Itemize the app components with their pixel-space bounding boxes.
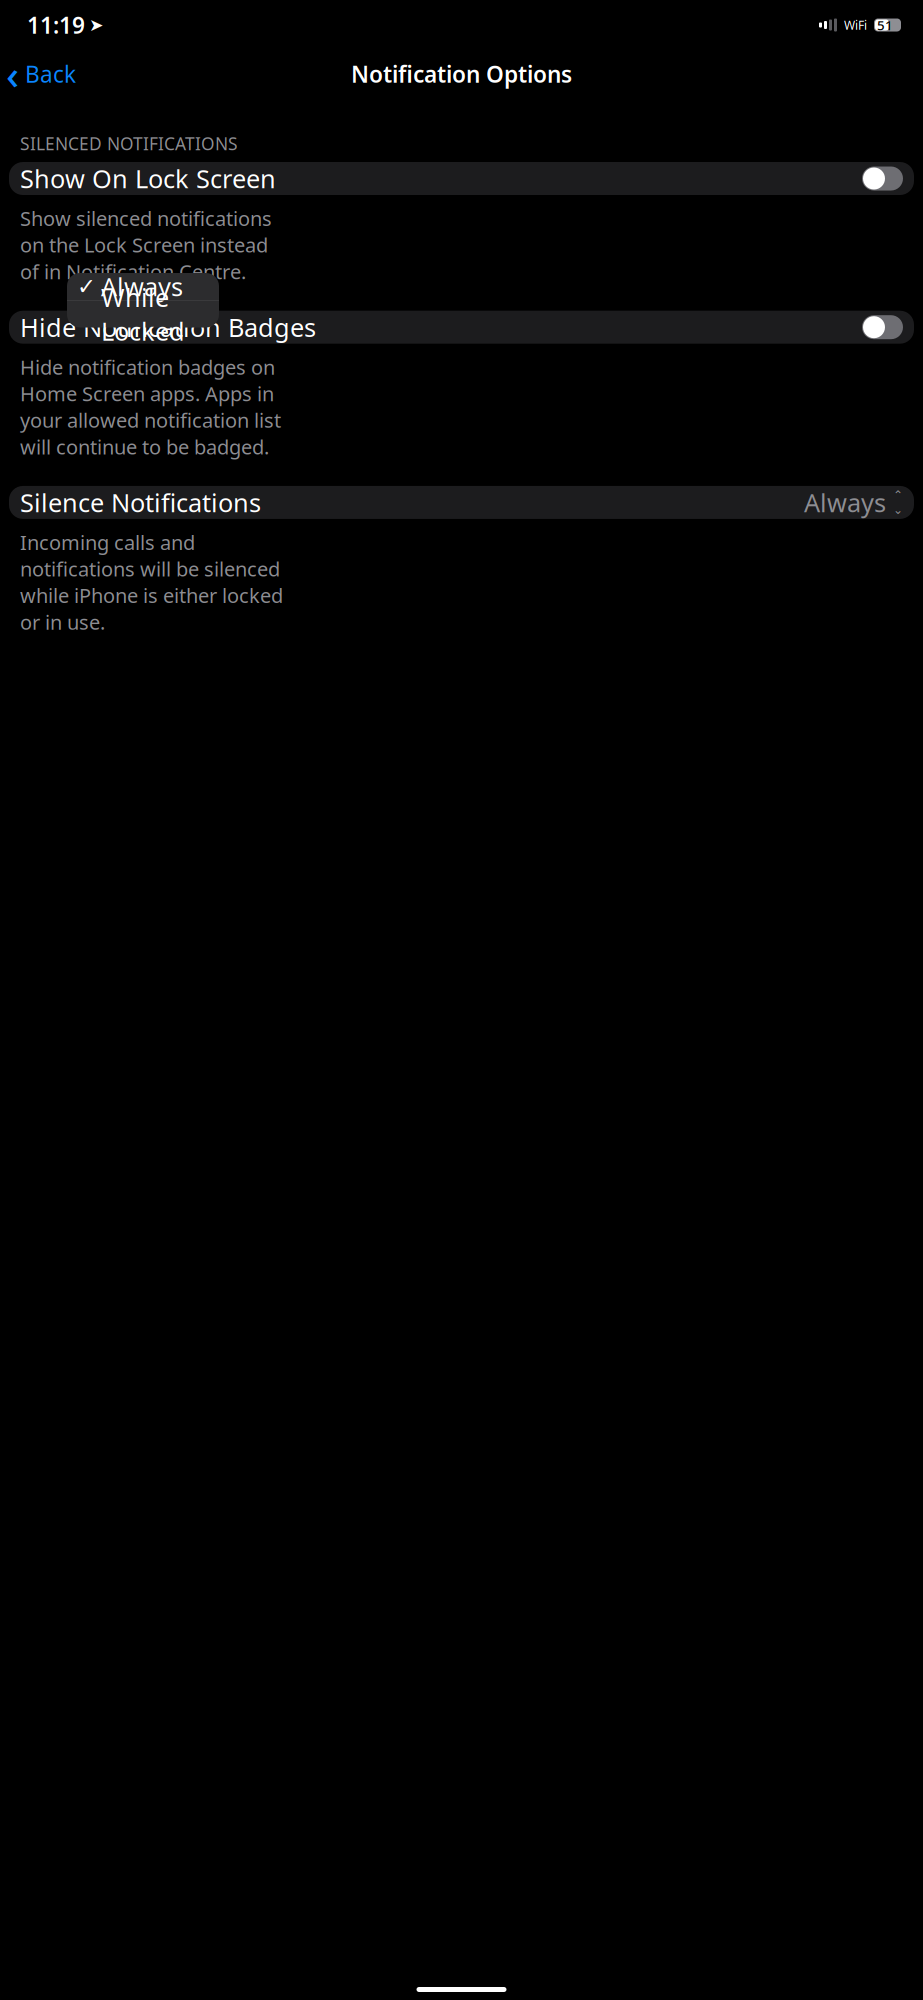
staticText: Show On Lock Screen	[20, 162, 276, 195]
staticText: 51	[877, 16, 893, 34]
staticText: Incoming calls and notifications will be…	[20, 529, 283, 635]
staticText: ✓	[77, 274, 96, 299]
staticText: SILENCED NOTIFICATIONS	[20, 132, 238, 155]
staticText: Show silenced notifications on the Lock …	[20, 205, 272, 285]
staticText: Always	[101, 270, 183, 303]
staticText: ➤	[89, 15, 104, 35]
staticText: Hide Notification Badges	[20, 310, 316, 344]
staticText: ⌄	[893, 503, 903, 516]
staticText: Notification Options	[351, 59, 572, 89]
staticText: Always	[804, 486, 886, 519]
staticText: WiFi	[844, 17, 867, 33]
button[interactable]	[67, 300, 219, 327]
button[interactable]: Show On Lock Screen	[0, 162, 923, 195]
staticText: While Locked	[101, 280, 185, 348]
button[interactable]: ‹	[0, 43, 76, 104]
staticText: 11:19	[27, 10, 85, 40]
button[interactable]: Hide Notification Badges	[0, 311, 923, 344]
button[interactable]: Silence Notifications	[0, 486, 923, 519]
staticText: Hide notification badges on Home Screen …	[20, 354, 281, 460]
button[interactable]: ✓	[67, 273, 219, 300]
staticText: Silence Notifications	[20, 486, 261, 519]
staticText: ‹	[6, 47, 19, 100]
staticText: ⌃	[893, 488, 903, 502]
staticText: Back	[25, 59, 76, 89]
